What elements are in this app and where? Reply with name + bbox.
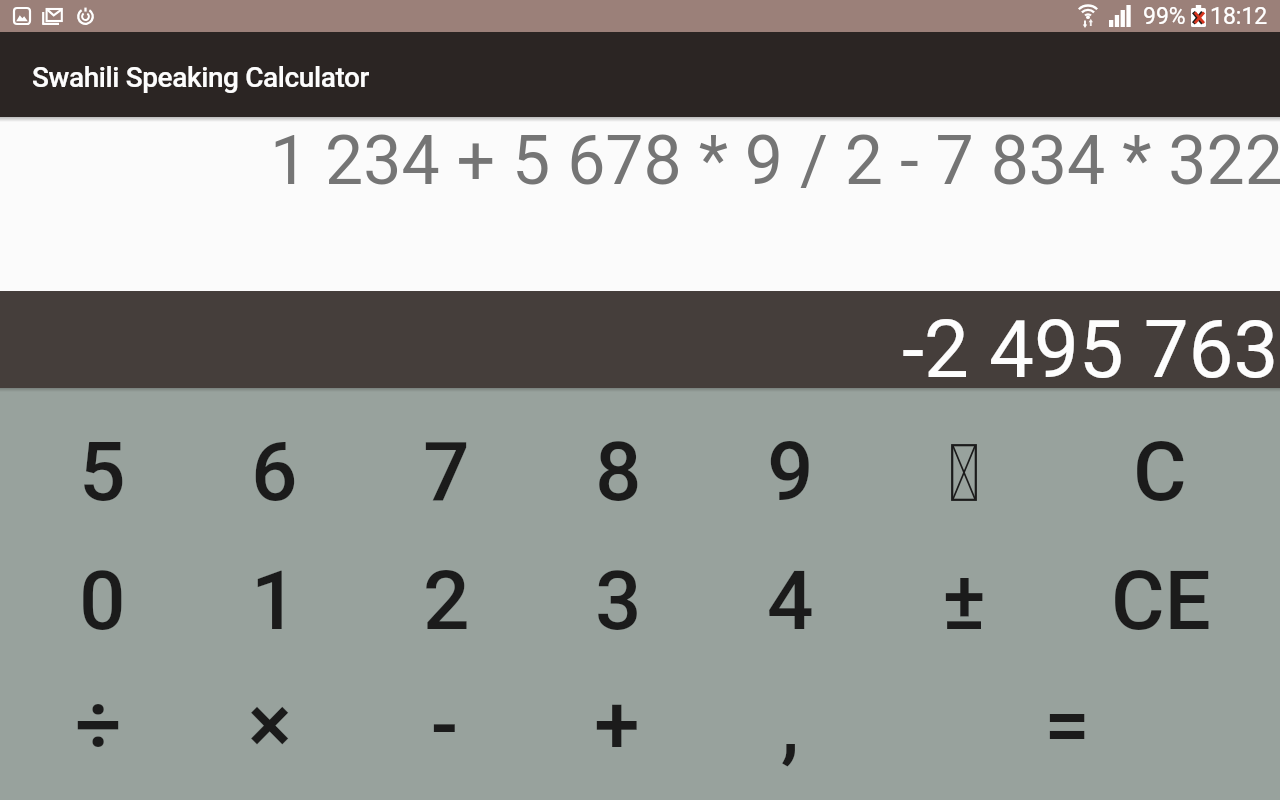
button[interactable]: 9 — [704, 409, 876, 535]
button[interactable]: 2 — [360, 538, 532, 664]
staticText: 0 — [79, 553, 126, 649]
button[interactable]: 4 — [704, 538, 876, 664]
staticText: × — [248, 677, 292, 773]
button[interactable]: ± — [878, 538, 1050, 664]
button[interactable]: 8 — [532, 409, 704, 535]
button[interactable]: ÷ — [12, 662, 184, 788]
staticText: 6 — [251, 424, 298, 520]
button[interactable]: 5 — [16, 409, 188, 535]
button[interactable]: 7 — [360, 409, 532, 535]
staticText: 9 — [767, 424, 814, 520]
staticText: 18:12 — [1210, 3, 1268, 30]
staticText: 8 — [595, 424, 642, 520]
button[interactable]: - — [358, 662, 530, 788]
staticText: C — [1133, 424, 1187, 520]
staticText: 5 — [79, 424, 126, 520]
button[interactable]: C — [1074, 409, 1246, 535]
staticText: Swahili Speaking Calculator — [32, 61, 370, 94]
button[interactable]: 3 — [532, 538, 704, 664]
staticText: + — [594, 677, 640, 773]
staticText: 1 — [251, 553, 298, 649]
button[interactable]: + — [531, 662, 703, 788]
button[interactable]: × — [184, 662, 356, 788]
staticText: CE — [1111, 553, 1211, 649]
staticText: = — [1044, 677, 1090, 773]
button[interactable]: 1 — [188, 538, 360, 664]
staticText: ÷ — [75, 677, 122, 773]
button[interactable] — [878, 409, 1050, 535]
staticText: , — [781, 677, 800, 773]
button[interactable]: CE — [1075, 538, 1247, 664]
staticText: 2 — [423, 553, 470, 649]
staticText: 3 — [595, 553, 642, 649]
button[interactable]: , — [704, 662, 876, 788]
staticText: 1 234 + 5 678 * 9 / 2 - 7 834 * 322 — [270, 121, 1280, 201]
staticText: 4 — [767, 553, 814, 649]
button[interactable]: 0 — [16, 538, 188, 664]
button[interactable]: 6 — [188, 409, 360, 535]
staticText: - — [431, 677, 458, 773]
button[interactable]: = — [969, 662, 1165, 788]
staticText: 7 — [423, 424, 470, 520]
staticText: -2 495 763 — [902, 303, 1279, 397]
staticText: 99% — [1143, 3, 1186, 30]
staticText: ± — [942, 553, 987, 649]
